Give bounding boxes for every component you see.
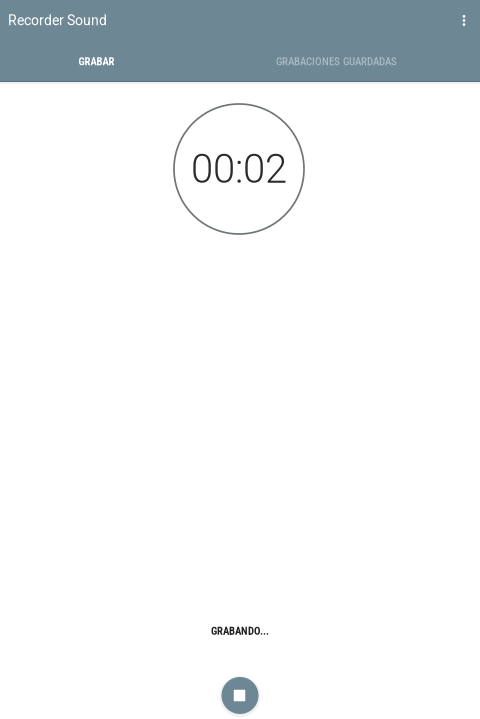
staticText: GRABANDO... — [211, 625, 269, 637]
staticText: 00:02 — [191, 146, 287, 192]
staticText: Recorder Sound — [8, 12, 107, 29]
button[interactable]: GRABAR — [0, 41, 193, 82]
staticText: GRABACIONES GUARDADAS — [276, 55, 397, 68]
staticText: GRABAR — [78, 55, 114, 68]
button[interactable]: More options — [448, 4, 480, 36]
button[interactable]: Stop recording — [218, 673, 262, 717]
button[interactable]: GRABACIONES GUARDADAS — [193, 41, 480, 82]
